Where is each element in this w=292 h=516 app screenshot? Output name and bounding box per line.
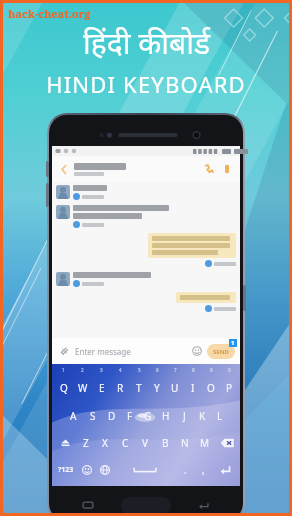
- button[interactable]: U: [166, 374, 184, 402]
- button[interactable]: R: [111, 374, 130, 402]
- staticText: Z: [83, 436, 89, 450]
- staticText: O: [207, 381, 215, 395]
- button[interactable]: S: [83, 402, 102, 429]
- staticText: 1: [231, 339, 235, 347]
- staticText: ?123: [58, 465, 74, 475]
- staticText: N: [181, 436, 189, 450]
- staticText: 8: [192, 367, 195, 373]
- staticText: U: [171, 381, 179, 395]
- staticText: हिंदी कीबोर्ड: [83, 22, 210, 63]
- button[interactable]: F: [121, 402, 139, 429]
- staticText: J: [183, 409, 186, 423]
- button[interactable]: Z: [76, 429, 95, 456]
- staticText: I: [191, 381, 195, 395]
- button[interactable]: ?123: [54, 456, 78, 483]
- button[interactable]: K: [193, 402, 211, 429]
- staticText: P: [226, 381, 233, 395]
- staticText: 3: [100, 367, 103, 373]
- button[interactable]: SEND: [207, 344, 235, 359]
- staticText: K: [199, 409, 206, 423]
- staticText: ,: [202, 463, 205, 477]
- button[interactable]: Back: [57, 162, 71, 176]
- button[interactable]: Y: [148, 374, 166, 402]
- button[interactable]: O: [202, 374, 220, 402]
- button[interactable]: L: [211, 402, 229, 429]
- staticText: V: [142, 436, 148, 450]
- staticText: 0: [228, 367, 231, 373]
- button[interactable]: Enter: [212, 456, 238, 483]
- button[interactable]: Backspace: [215, 429, 238, 456]
- staticText: Enter message: [75, 346, 131, 357]
- button[interactable]: Back: [197, 498, 211, 512]
- button[interactable]: I: [184, 374, 202, 402]
- staticText: .: [184, 463, 187, 477]
- button[interactable]: M: [195, 429, 215, 456]
- staticText: 1: [62, 367, 65, 373]
- button[interactable]: E: [92, 374, 111, 402]
- button[interactable]: Space: [114, 456, 176, 483]
- staticText: T: [136, 381, 142, 395]
- staticText: M: [200, 436, 210, 450]
- button[interactable]: Change language: [96, 456, 114, 483]
- staticText: HINDI KEYBOARD: [46, 69, 246, 99]
- button[interactable]: Recents: [81, 498, 95, 512]
- staticText: G: [144, 409, 152, 423]
- button[interactable]: H: [157, 402, 175, 429]
- staticText: C: [122, 436, 129, 450]
- staticText: F: [127, 409, 133, 423]
- button[interactable]: Enter message: [75, 346, 190, 357]
- button[interactable]: ,: [194, 456, 212, 483]
- staticText: D: [108, 409, 116, 423]
- button[interactable]: G: [139, 402, 157, 429]
- button[interactable]: Home: [121, 497, 171, 514]
- button[interactable]: N: [175, 429, 195, 456]
- staticText: 9: [210, 367, 213, 373]
- staticText: Q: [60, 381, 68, 395]
- button[interactable]: More options: [219, 161, 235, 177]
- staticText: H: [162, 409, 170, 423]
- staticText: B: [162, 436, 169, 450]
- staticText: 5: [138, 367, 141, 373]
- staticText: W: [78, 381, 88, 395]
- button[interactable]: T: [130, 374, 148, 402]
- staticText: 4: [119, 367, 122, 373]
- button[interactable]: .: [176, 456, 194, 483]
- button[interactable]: A: [64, 402, 83, 429]
- button[interactable]: Q: [54, 374, 73, 402]
- button[interactable]: X: [95, 429, 115, 456]
- staticText: L: [217, 409, 223, 423]
- staticText: 2: [81, 367, 84, 373]
- staticText: X: [102, 436, 108, 450]
- button[interactable]: Call: [201, 161, 217, 177]
- button[interactable]: D: [102, 402, 121, 429]
- button[interactable]: Emoji: [78, 456, 96, 483]
- staticText: SEND: [213, 348, 229, 356]
- staticText: S: [90, 409, 96, 423]
- button[interactable]: Shift: [54, 429, 76, 456]
- button[interactable]: V: [135, 429, 155, 456]
- button[interactable]: Emoji: [190, 344, 204, 358]
- staticText: A: [70, 409, 77, 423]
- button[interactable]: P: [220, 374, 238, 402]
- button[interactable]: B: [155, 429, 175, 456]
- staticText: 6: [156, 367, 159, 373]
- button[interactable]: J: [175, 402, 193, 429]
- staticText: 7: [174, 367, 177, 373]
- button[interactable]: W: [73, 374, 92, 402]
- staticText: hack-cheat.org: [8, 6, 91, 21]
- button[interactable]: Attach: [57, 344, 71, 358]
- button[interactable]: C: [115, 429, 135, 456]
- staticText: Y: [154, 381, 160, 395]
- staticText: R: [117, 381, 124, 395]
- staticText: E: [99, 381, 105, 395]
